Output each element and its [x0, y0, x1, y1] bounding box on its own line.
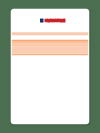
staticText: VERIFIED SITE: [44, 13, 65, 28]
button[interactable]: Verified site badge: [40, 18, 65, 22]
